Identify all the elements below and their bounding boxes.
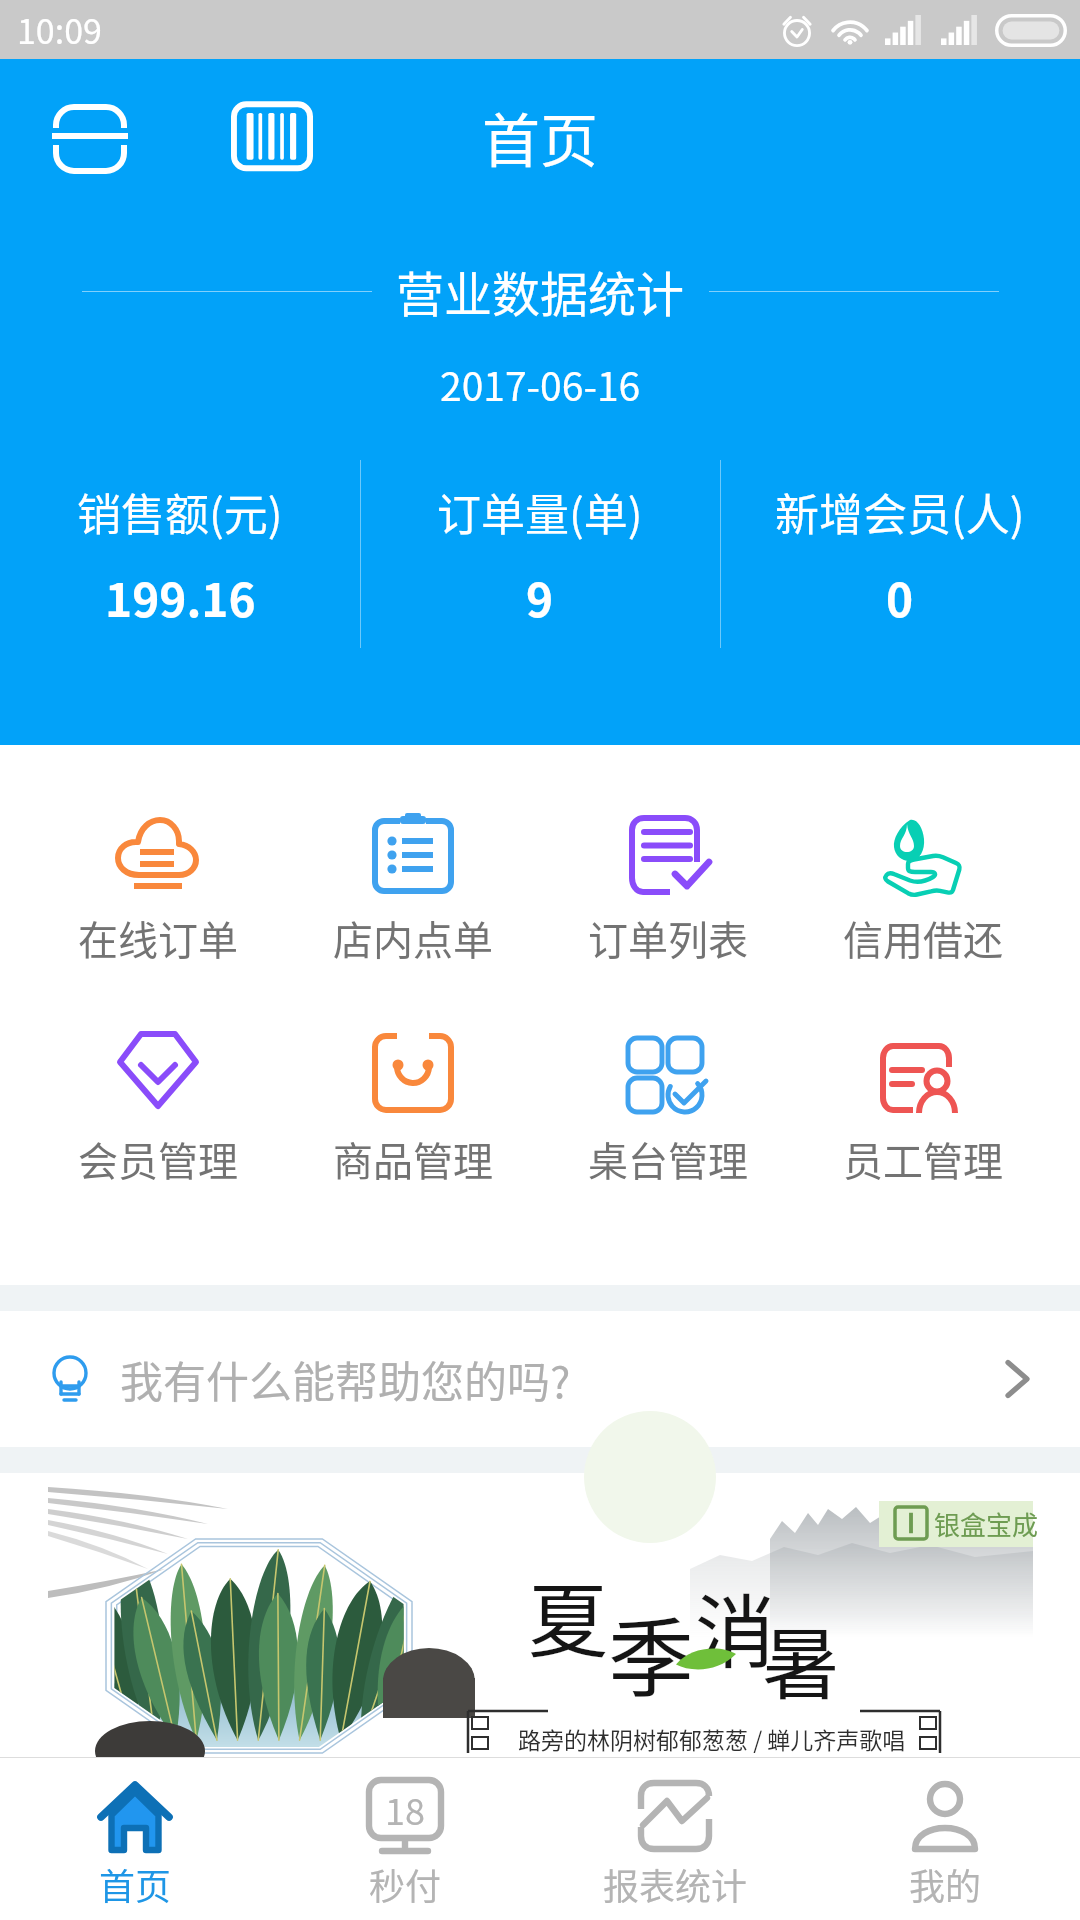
staticText: 2017-06-16 bbox=[440, 356, 641, 412]
staticText: 首页 bbox=[99, 1858, 172, 1910]
staticText: 18 bbox=[385, 1783, 425, 1835]
button[interactable]: 条形码 bbox=[228, 98, 316, 186]
button[interactable]: 店内点单 bbox=[285, 813, 540, 967]
staticText: 消 bbox=[695, 1568, 775, 1684]
staticText: 暑 bbox=[762, 1603, 841, 1716]
staticText: 夏 bbox=[528, 1557, 608, 1673]
button[interactable]: 信用借还 bbox=[795, 813, 1050, 967]
button[interactable]: 扫一扫 bbox=[46, 98, 134, 186]
staticText: 在线订单 bbox=[78, 909, 238, 967]
staticText: 我的 bbox=[909, 1858, 982, 1910]
staticText: 秒付 bbox=[369, 1858, 442, 1910]
staticText: 路旁的林阴树郁郁葱葱 / 蝉儿齐声歌唱 bbox=[518, 1722, 906, 1755]
button[interactable]: 报表统计 bbox=[540, 1758, 810, 1920]
button[interactable]: 首页 bbox=[0, 1758, 270, 1920]
staticText: 我有什么能帮助您的吗? bbox=[120, 1348, 571, 1410]
staticText: 桌台管理 bbox=[588, 1130, 748, 1188]
button[interactable]: 我有什么能帮助您的吗? bbox=[0, 1311, 1080, 1447]
staticText: 10:09 bbox=[17, 5, 102, 54]
staticText: 订单量(单) bbox=[437, 480, 643, 544]
button[interactable]: 新增会员(人) bbox=[720, 460, 1080, 648]
button[interactable]: 我的 bbox=[810, 1758, 1080, 1920]
staticText: 商品管理 bbox=[333, 1130, 493, 1188]
button[interactable]: 商品管理 bbox=[285, 1026, 540, 1188]
button[interactable]: 会员管理 bbox=[30, 1026, 285, 1188]
button[interactable]: 夏 bbox=[0, 1473, 1080, 1757]
staticText: 199.16 bbox=[105, 564, 256, 631]
staticText: 会员管理 bbox=[78, 1130, 238, 1188]
staticText: 员工管理 bbox=[843, 1130, 1003, 1188]
staticText: 季 bbox=[608, 1590, 694, 1715]
button[interactable]: 订单量(单) bbox=[360, 460, 720, 648]
staticText: 0 bbox=[886, 564, 914, 631]
staticText: 首页 bbox=[482, 95, 599, 179]
button[interactable]: 订单列表 bbox=[540, 813, 795, 967]
staticText: 营业数据统计 bbox=[396, 256, 685, 326]
staticText: 店内点单 bbox=[333, 909, 493, 967]
button[interactable]: 18 bbox=[270, 1758, 540, 1920]
button[interactable]: 员工管理 bbox=[795, 1026, 1050, 1188]
staticText: 新增会员(人) bbox=[775, 480, 1025, 544]
staticText: 9 bbox=[526, 564, 554, 631]
staticText: 银盒宝成 bbox=[934, 1505, 1039, 1543]
staticText: 销售额(元) bbox=[77, 480, 283, 544]
button[interactable]: 销售额(元) bbox=[0, 460, 360, 648]
staticText: 报表统计 bbox=[603, 1858, 748, 1910]
staticText: 信用借还 bbox=[843, 909, 1003, 967]
staticText: 订单列表 bbox=[588, 909, 748, 967]
button[interactable]: 在线订单 bbox=[30, 813, 285, 967]
button[interactable]: 桌台管理 bbox=[540, 1026, 795, 1188]
